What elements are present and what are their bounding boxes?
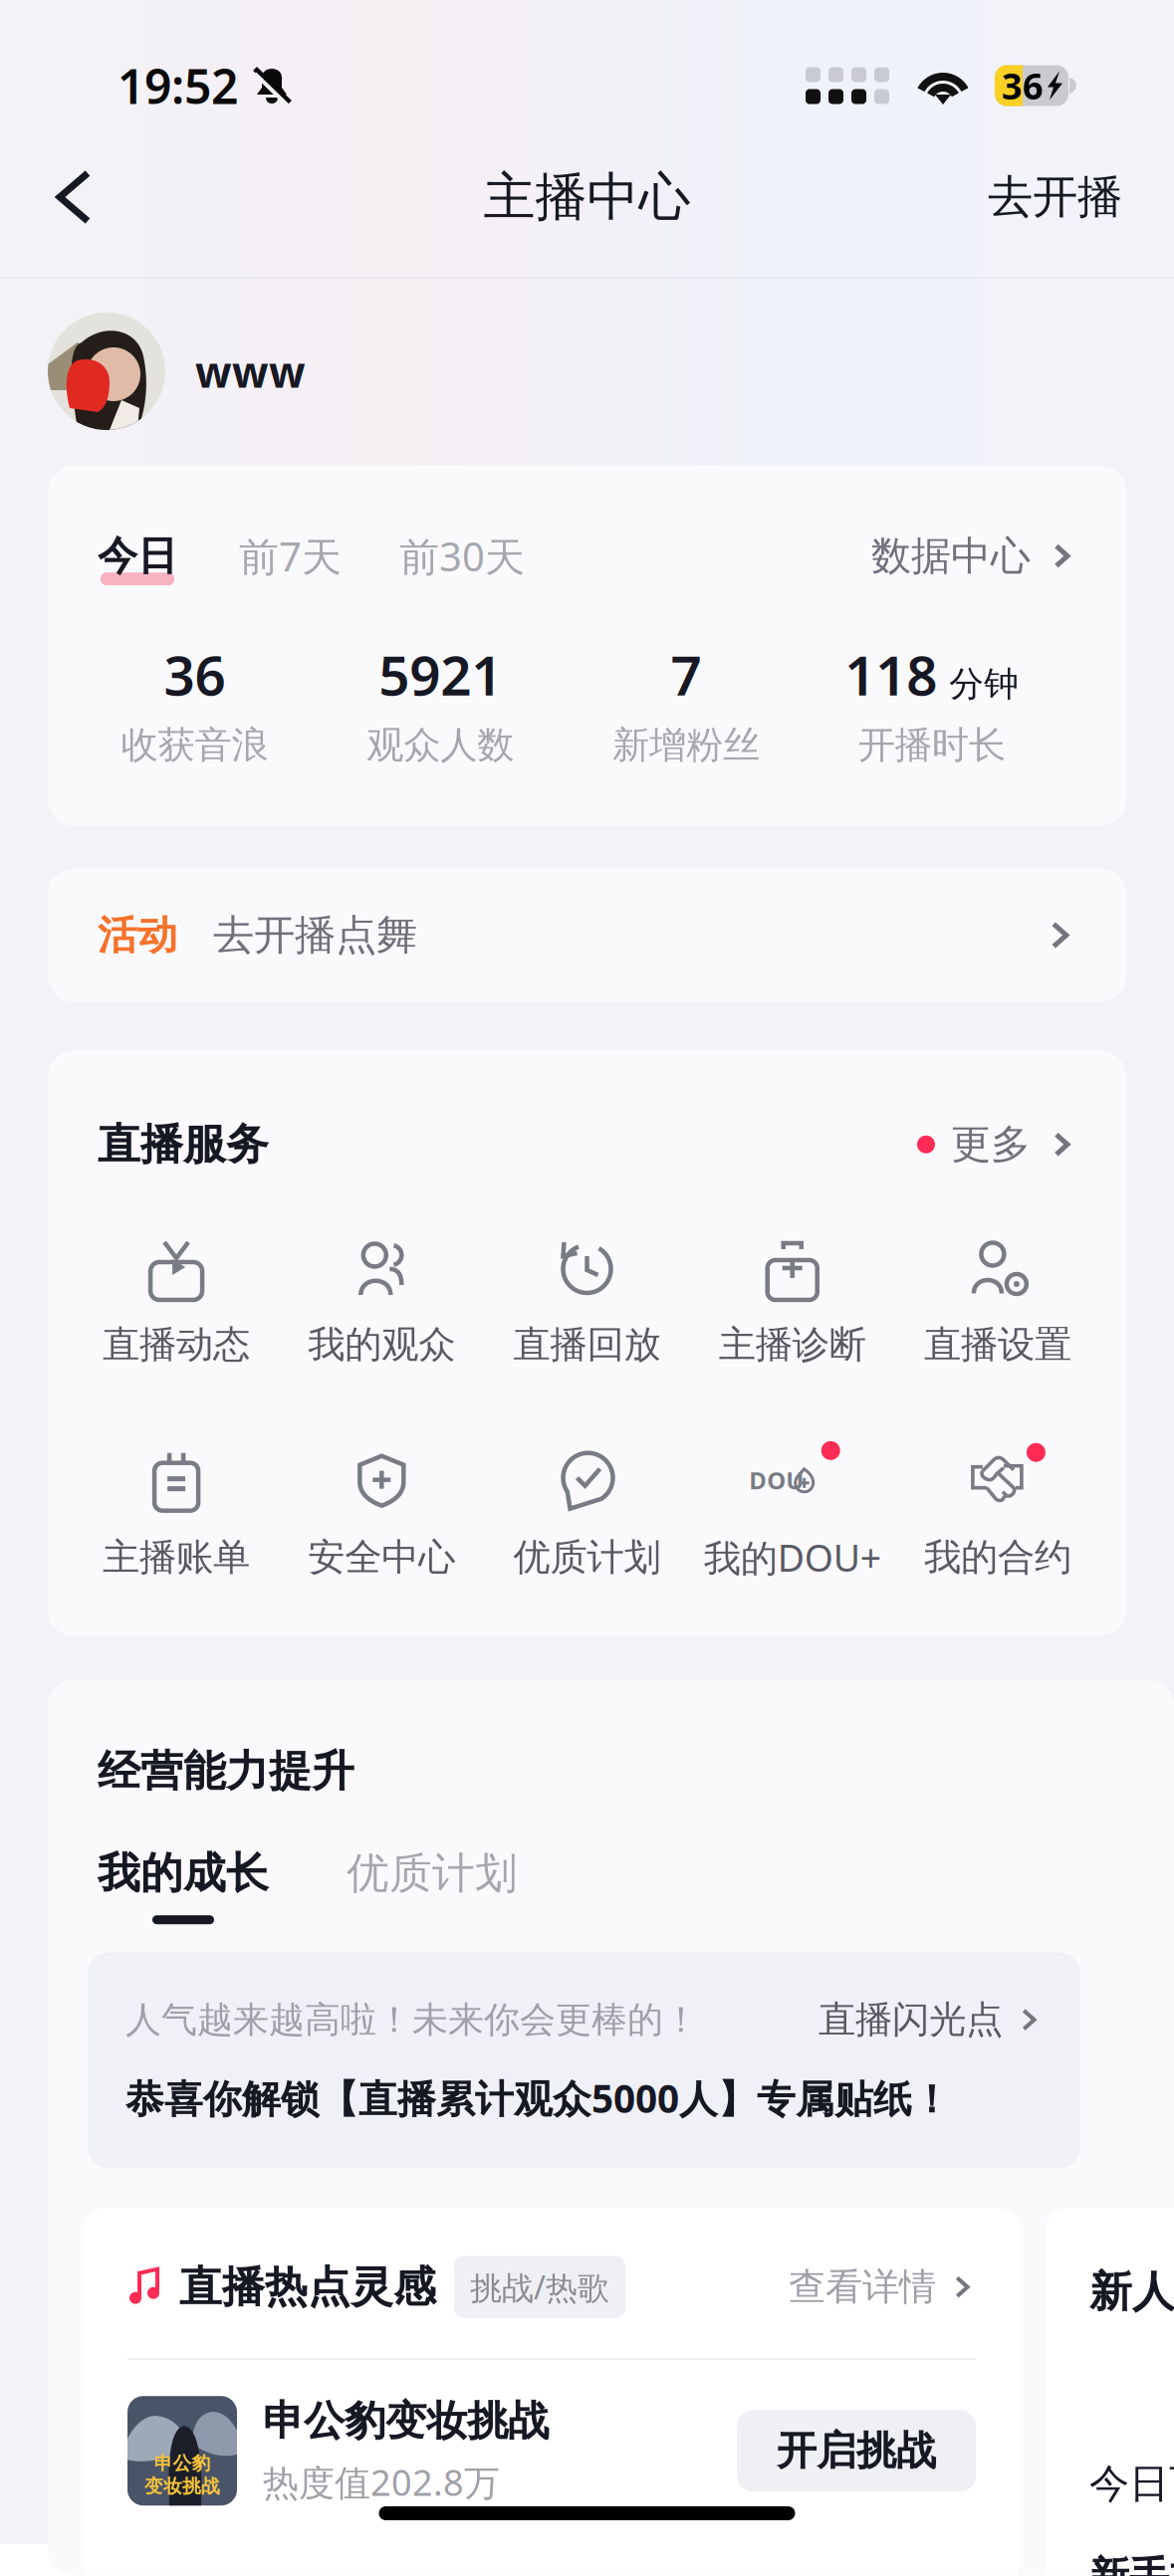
staticText: 118	[845, 638, 937, 710]
staticText: 新增粉丝	[612, 722, 760, 768]
staticText: 申公豹	[154, 2452, 211, 2475]
staticText: 开启挑战	[777, 2426, 936, 2475]
staticText: 直播闪光点	[819, 1997, 1003, 2043]
button[interactable]: 开启挑战	[737, 2410, 976, 2492]
staticText: 我的DOU+	[704, 1533, 881, 1582]
button[interactable]: 我的合约	[895, 1449, 1100, 1580]
staticText: 7	[671, 638, 701, 710]
button[interactable]: 安全中心	[279, 1449, 484, 1580]
button[interactable]: 查看详情	[789, 2264, 976, 2310]
staticText: 活动	[98, 911, 177, 960]
staticText: 5921	[378, 638, 502, 710]
staticText: DOU	[749, 1464, 804, 1496]
staticText: 新手礼包	[1089, 2552, 1174, 2576]
staticText: 收获音浪	[121, 722, 268, 768]
button[interactable]: 返回	[0, 139, 127, 255]
button[interactable]: 我的观众	[279, 1236, 484, 1368]
staticText: 19:52	[117, 54, 238, 117]
staticText: 我的观众	[308, 1322, 455, 1368]
staticText: 我的合约	[924, 1535, 1071, 1580]
staticText: 36	[164, 638, 225, 710]
button[interactable]: 去开播	[962, 139, 1174, 255]
staticText: 变妆挑战	[144, 2475, 220, 2498]
staticText: 优质计划	[347, 1847, 518, 1899]
staticText: 新人任务	[1089, 2266, 1174, 2318]
button[interactable]: 更多	[917, 1120, 1076, 1169]
button[interactable]: DOU	[690, 1447, 895, 1582]
staticText: 36	[1002, 62, 1044, 109]
staticText: 我的成长	[98, 1847, 269, 1899]
staticText: 主播中心	[483, 165, 691, 229]
button[interactable]: 前30天	[342, 530, 525, 582]
staticText: 今日	[98, 532, 177, 580]
staticText: 挑战/热歌	[470, 2266, 609, 2308]
button[interactable]: 活动	[48, 869, 1126, 1002]
button[interactable]: 优质计划	[269, 1847, 518, 1924]
staticText: 主播诊断	[719, 1322, 866, 1368]
button[interactable]: 主播账单	[74, 1449, 279, 1580]
button[interactable]: 我的成长	[98, 1847, 269, 1924]
staticText: 去开播	[988, 169, 1122, 225]
staticText: 去开播点舞	[213, 910, 417, 961]
staticText: 直播设置	[924, 1322, 1071, 1368]
staticText: 前30天	[399, 530, 525, 582]
staticText: 人气越来越高啦！未来你会更棒的！	[125, 1998, 699, 2042]
staticText: 安全中心	[308, 1535, 455, 1580]
staticText: 分钟	[949, 663, 1019, 705]
staticText: 申公豹变妆挑战	[263, 2396, 549, 2446]
staticText: 更多	[951, 1120, 1031, 1169]
staticText: 数据中心	[871, 532, 1031, 580]
staticText: 直播服务	[98, 1118, 269, 1171]
staticText: 直播热点灵感	[179, 2261, 436, 2313]
staticText: 查看详情	[789, 2264, 936, 2310]
button[interactable]: 今日	[98, 532, 177, 580]
staticText: www	[195, 343, 306, 400]
staticText: 直播回放	[513, 1322, 661, 1368]
staticText: 热度值202.8万	[263, 2458, 500, 2506]
button[interactable]: 直播设置	[895, 1236, 1100, 1368]
staticText: 直播动态	[103, 1322, 250, 1368]
staticText: 优质计划	[513, 1535, 661, 1580]
staticText: 观众人数	[367, 722, 514, 768]
staticText: 开播时长	[858, 722, 1005, 768]
button[interactable]: 直播动态	[74, 1236, 279, 1368]
button[interactable]: 优质计划	[484, 1449, 690, 1580]
button[interactable]: 直播闪光点	[819, 1997, 1043, 2043]
button[interactable]: 前7天	[177, 530, 342, 582]
button[interactable]: 直播回放	[484, 1236, 690, 1368]
button[interactable]: 数据中心	[871, 532, 1076, 580]
staticText: 今日可领	[1089, 2459, 1174, 2508]
staticText: 主播账单	[103, 1535, 250, 1580]
button[interactable]: 主播诊断	[690, 1236, 895, 1368]
staticText: 前7天	[239, 530, 342, 582]
staticText: 恭喜你解锁【直播累计观众5000人】专属贴纸！	[125, 2072, 951, 2124]
staticText: 经营能力提升	[98, 1745, 354, 1797]
